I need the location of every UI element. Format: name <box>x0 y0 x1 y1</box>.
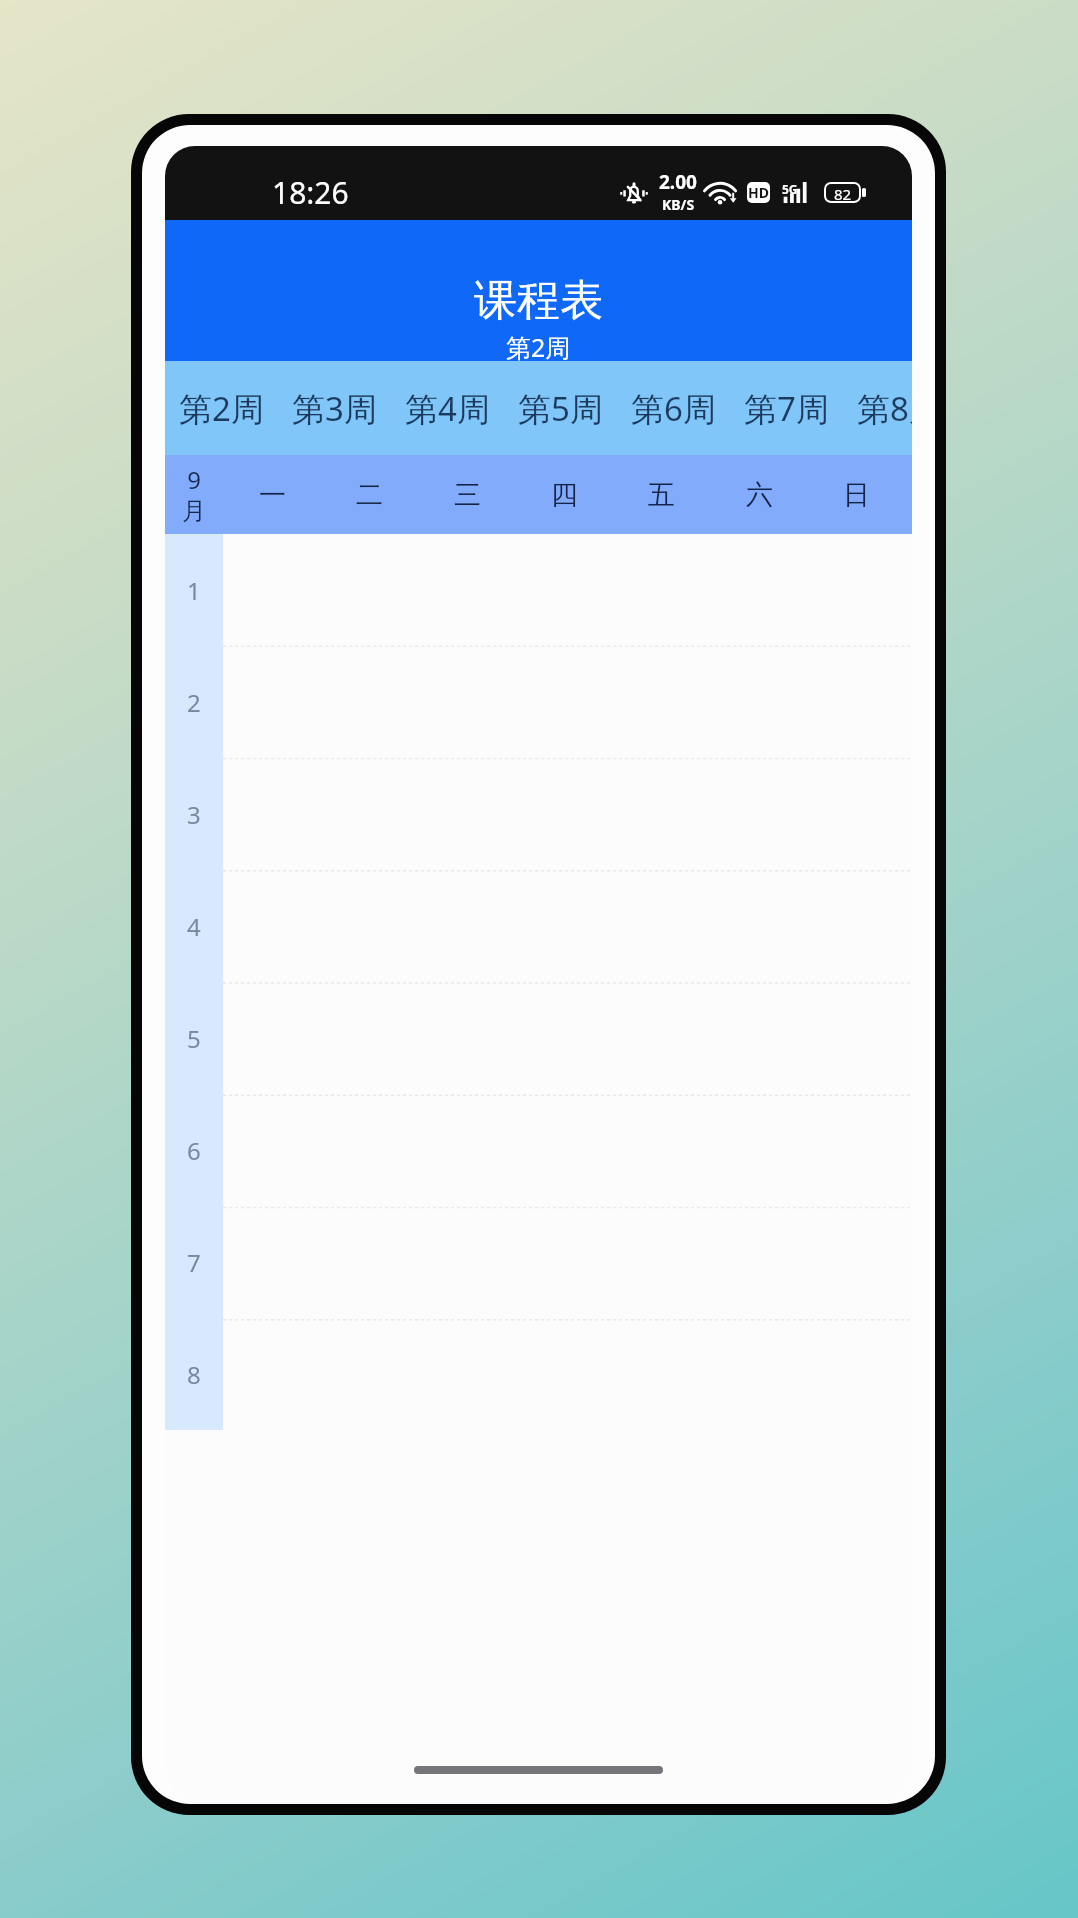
staticText: 82 <box>834 184 852 201</box>
button[interactable]: 第5周 <box>504 361 617 455</box>
button[interactable]: 一 <box>223 455 321 534</box>
staticText: 6 <box>187 1134 201 1167</box>
button[interactable]: 第7节 <box>165 1206 223 1318</box>
button[interactable]: 五 <box>612 455 710 534</box>
staticText: 第3周 <box>292 386 377 431</box>
staticText: 7 <box>187 1246 201 1279</box>
staticText: 六 <box>746 478 773 512</box>
staticText: 5G <box>782 181 798 197</box>
button[interactable]: 日 <box>807 455 905 534</box>
staticText: HD <box>748 183 769 202</box>
button[interactable]: 第6周 <box>617 361 730 455</box>
button[interactable]: 第4周 <box>391 361 504 455</box>
button[interactable]: 第7周 <box>730 361 843 455</box>
button[interactable]: 第3节 <box>165 758 223 870</box>
other: Ringer muted / vibrate <box>619 181 649 205</box>
staticText: 9 <box>187 463 201 496</box>
staticText: 月 <box>182 496 206 526</box>
button[interactable]: 第2周 <box>165 361 278 455</box>
button[interactable]: 四 <box>515 455 613 534</box>
staticText: 三 <box>454 478 481 512</box>
staticText: 第2周 <box>179 386 264 431</box>
button[interactable]: 第3周 <box>278 361 391 455</box>
other: Wi-Fi connected <box>708 182 736 204</box>
button[interactable]: 第1节 <box>165 534 223 646</box>
staticText: 第2周 <box>506 330 571 364</box>
staticText: 第4周 <box>405 386 490 431</box>
staticText: 2.00 <box>659 169 697 195</box>
button[interactable]: 三 <box>418 455 516 534</box>
staticText: 18:26 <box>272 172 349 213</box>
button[interactable]: 第4节 <box>165 870 223 982</box>
staticText: KB/S <box>662 195 695 214</box>
button[interactable]: 课程表 <box>165 220 912 361</box>
staticText: 第6周 <box>631 386 716 431</box>
staticText: 五 <box>648 478 675 512</box>
button[interactable]: 第8周 <box>843 361 912 455</box>
button[interactable]: 第8节 <box>165 1318 223 1430</box>
button[interactable]: 二 <box>320 455 418 534</box>
button[interactable]: 第6节 <box>165 1094 223 1206</box>
button[interactable]: 第2节 <box>165 646 223 758</box>
button[interactable]: 第5节 <box>165 982 223 1094</box>
button[interactable]: 六 <box>710 455 808 534</box>
staticText: 一 <box>259 478 286 512</box>
